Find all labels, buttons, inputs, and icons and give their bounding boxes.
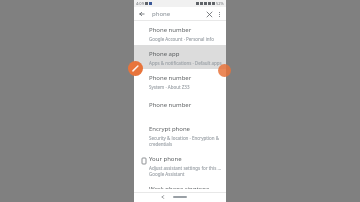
staticText: phone (152, 10, 171, 18)
staticText: System · About Z33 (149, 84, 190, 90)
button[interactable]: Phone number (134, 69, 226, 93)
staticText: credentials (149, 141, 173, 147)
button[interactable]: Clear (204, 9, 214, 19)
staticText: Google Account · Personal info (149, 36, 214, 42)
staticText: Apps & notifications · Default apps (149, 60, 222, 66)
button[interactable]: Encrypt phone (134, 116, 226, 150)
staticText: Phone number (149, 26, 192, 34)
button[interactable]: Phone number (134, 93, 226, 116)
staticText: Phone app (149, 50, 180, 58)
staticText: Phone number (149, 74, 192, 82)
staticText: 4:09 (136, 1, 144, 6)
button[interactable]: Back (159, 193, 167, 201)
staticText: Adjust assistant settings for this devic… (149, 165, 222, 171)
button[interactable]: Work phone ringtone (134, 180, 226, 192)
staticText: Google Assistant (149, 171, 185, 177)
button[interactable]: Your phone (134, 150, 226, 180)
button[interactable]: More options (214, 9, 224, 19)
staticText: Work phone ringtone (149, 185, 210, 189)
button[interactable]: Back (137, 9, 147, 19)
staticText: Phone number (149, 101, 192, 109)
staticText: Your phone (149, 155, 182, 163)
staticText: Security & location · Encryption & (149, 135, 220, 141)
staticText: Encrypt phone (149, 125, 190, 133)
button[interactable]: Phone app (134, 45, 226, 69)
button[interactable]: Phone number (134, 21, 226, 45)
button[interactable]: Home (173, 196, 187, 198)
staticText: 52% (216, 1, 224, 6)
